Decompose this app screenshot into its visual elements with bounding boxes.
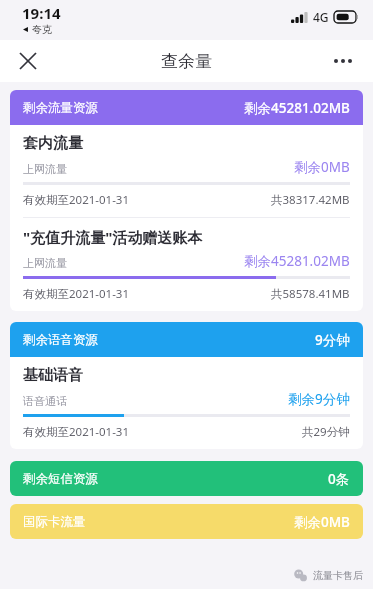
staticText: 剩余0MB bbox=[294, 158, 350, 176]
button[interactable]: 剩余语音资源 bbox=[10, 322, 363, 449]
staticText: 流量卡售后 bbox=[313, 569, 363, 582]
staticText: 国际卡流量 bbox=[23, 514, 86, 530]
staticText: 0条 bbox=[328, 470, 350, 488]
staticText: 套内流量 bbox=[23, 134, 83, 153]
staticText: 上网流量 bbox=[23, 256, 67, 270]
staticText: 上网流量 bbox=[23, 162, 67, 176]
staticText: 剩余0MB bbox=[294, 513, 350, 531]
staticText: 基础语音 bbox=[23, 366, 83, 385]
staticText: 查余量 bbox=[161, 51, 212, 72]
staticText: "充值升流量"活动赠送账本 bbox=[23, 227, 203, 247]
staticText: 有效期至2021-01-31 bbox=[23, 286, 130, 302]
button[interactable]: More options bbox=[323, 41, 363, 81]
staticText: 共29分钟 bbox=[302, 424, 350, 440]
staticText: 19:14 bbox=[22, 3, 61, 23]
staticText: 9分钟 bbox=[315, 331, 350, 349]
button[interactable]: Close bbox=[8, 41, 48, 81]
staticText: 剩余短信资源 bbox=[23, 471, 98, 487]
button[interactable]: 剩余短信资源 bbox=[10, 461, 363, 496]
staticText: 语音通话 bbox=[23, 394, 67, 408]
staticText: 有效期至2021-01-31 bbox=[23, 192, 130, 208]
staticText: 剩余9分钟 bbox=[288, 390, 350, 408]
staticText: 有效期至2021-01-31 bbox=[23, 424, 130, 440]
staticText: 剩余45281.02MB bbox=[244, 252, 350, 270]
button[interactable]: 剩余流量资源 bbox=[10, 90, 363, 311]
staticText: 4G bbox=[313, 9, 329, 25]
staticText: 剩余语音资源 bbox=[23, 332, 98, 348]
staticText: 夸克 bbox=[32, 23, 52, 36]
staticText: 剩余流量资源 bbox=[23, 100, 98, 116]
button[interactable]: 国际卡流量 bbox=[10, 504, 363, 539]
staticText: 共58578.41MB bbox=[271, 286, 350, 302]
staticText: 共38317.42MB bbox=[271, 192, 350, 208]
staticText: 剩余45281.02MB bbox=[244, 99, 350, 117]
